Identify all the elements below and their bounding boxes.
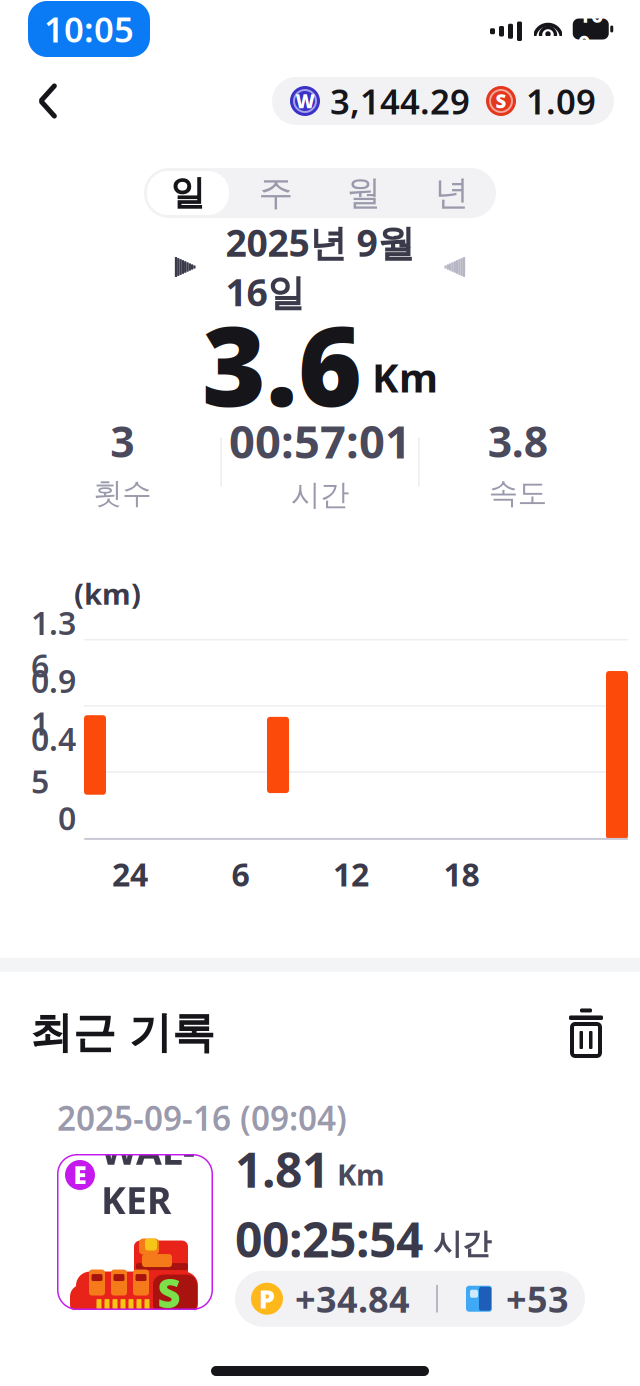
- staticText: 월: [346, 172, 381, 214]
- staticText: Km: [337, 1155, 385, 1194]
- staticText: 12: [333, 853, 369, 895]
- staticText: (km): [74, 574, 141, 613]
- staticText: 2025-09-16 (09:04): [57, 1096, 347, 1140]
- staticText: 속도: [489, 475, 547, 511]
- staticText: 0: [58, 797, 76, 839]
- staticText: 1.36: [31, 601, 76, 686]
- staticText: E: [73, 1159, 86, 1191]
- staticText: 2025년 9월 16일: [225, 217, 414, 317]
- button[interactable]: 월: [320, 168, 408, 218]
- staticText: 3,144.29: [330, 78, 470, 124]
- button[interactable]: 일: [144, 168, 232, 218]
- button[interactable]: 2025-09-16 (09:04): [33, 1074, 607, 1304]
- staticText: 24: [112, 853, 148, 895]
- staticText: 3: [110, 413, 134, 469]
- staticText: +34.84: [295, 1275, 410, 1323]
- button[interactable]: Delete records: [560, 1007, 612, 1059]
- button[interactable]: 주: [232, 168, 320, 218]
- staticText: 시간: [291, 477, 349, 513]
- staticText: 3.8: [488, 413, 548, 469]
- button[interactable]: Previous day: [165, 247, 205, 287]
- staticText: P: [259, 1282, 275, 1315]
- button[interactable]: W: [272, 77, 614, 125]
- staticText: Km: [372, 350, 438, 403]
- staticText: W: [295, 89, 314, 113]
- staticText: 1.09: [526, 78, 596, 124]
- staticText: 3.6: [202, 291, 362, 437]
- staticText: 100: [578, 0, 604, 59]
- staticText: WALKER: [101, 1125, 195, 1225]
- staticText: 일: [170, 172, 205, 214]
- staticText: 18: [443, 853, 479, 895]
- staticText: 최근 기록: [30, 1006, 215, 1059]
- staticText: S: [157, 1266, 180, 1319]
- staticText: 년: [434, 172, 469, 214]
- button[interactable]: Back: [26, 74, 70, 128]
- staticText: 10:05: [44, 6, 134, 52]
- button[interactable]: Next day: [435, 247, 475, 287]
- staticText: 1.81: [235, 1137, 329, 1201]
- staticText: 00:57:01: [229, 411, 411, 471]
- staticText: 주: [258, 172, 293, 214]
- staticText: 0.91: [31, 659, 76, 744]
- staticText: 횟수: [93, 475, 151, 511]
- staticText: 시간: [433, 1226, 491, 1262]
- staticText: 0.45: [31, 717, 76, 802]
- staticText: 00:25:54: [235, 1207, 423, 1271]
- button[interactable]: 년: [408, 168, 496, 218]
- staticText: 6: [231, 853, 249, 895]
- staticText: S: [495, 89, 506, 113]
- staticText: +53: [506, 1275, 569, 1323]
